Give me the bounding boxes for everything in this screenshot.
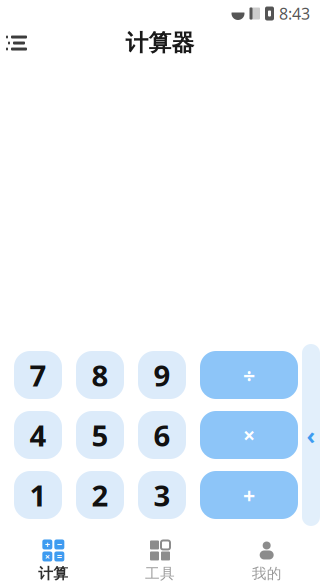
staticText: 9 <box>153 355 170 394</box>
staticText: 8 <box>91 355 108 394</box>
button[interactable]: 菜单 <box>0 23 44 63</box>
button[interactable]: 展开更多按键 <box>302 344 320 526</box>
button[interactable]: 2 <box>76 471 124 519</box>
staticText: × <box>243 421 255 449</box>
button[interactable]: + <box>0 537 107 585</box>
button[interactable]: × <box>200 411 298 459</box>
staticText: 计算 <box>38 564 68 582</box>
button[interactable]: 6 <box>138 411 186 459</box>
button[interactable]: 7 <box>14 351 62 399</box>
button[interactable]: 9 <box>138 351 186 399</box>
button[interactable]: 我的 <box>213 537 320 585</box>
button[interactable]: + <box>200 471 298 519</box>
staticText: 1 <box>29 475 46 514</box>
staticText: ‹ <box>306 419 315 451</box>
button[interactable]: 4 <box>14 411 62 459</box>
button[interactable]: 8 <box>76 351 124 399</box>
button[interactable]: 1 <box>14 471 62 519</box>
staticText: 我的 <box>252 564 282 582</box>
button[interactable]: ÷ <box>200 351 298 399</box>
staticText: 6 <box>153 415 170 454</box>
staticText: 4 <box>29 415 46 454</box>
button[interactable]: 3 <box>138 471 186 519</box>
staticText: 3 <box>153 475 170 514</box>
staticText: ÷ <box>243 361 255 389</box>
staticText: 2 <box>91 475 108 514</box>
button[interactable]: 5 <box>76 411 124 459</box>
staticText: − <box>57 538 62 551</box>
staticText: 工具 <box>145 564 175 582</box>
staticText: 8:43 <box>279 3 310 24</box>
staticText: 计算器 <box>125 29 194 57</box>
staticText: = <box>57 550 62 563</box>
staticText: + <box>243 481 255 509</box>
staticText: + <box>45 538 50 551</box>
staticText: 7 <box>29 355 46 394</box>
staticText: 5 <box>91 415 108 454</box>
staticText: × <box>45 550 50 563</box>
button[interactable]: 工具 <box>107 537 213 585</box>
